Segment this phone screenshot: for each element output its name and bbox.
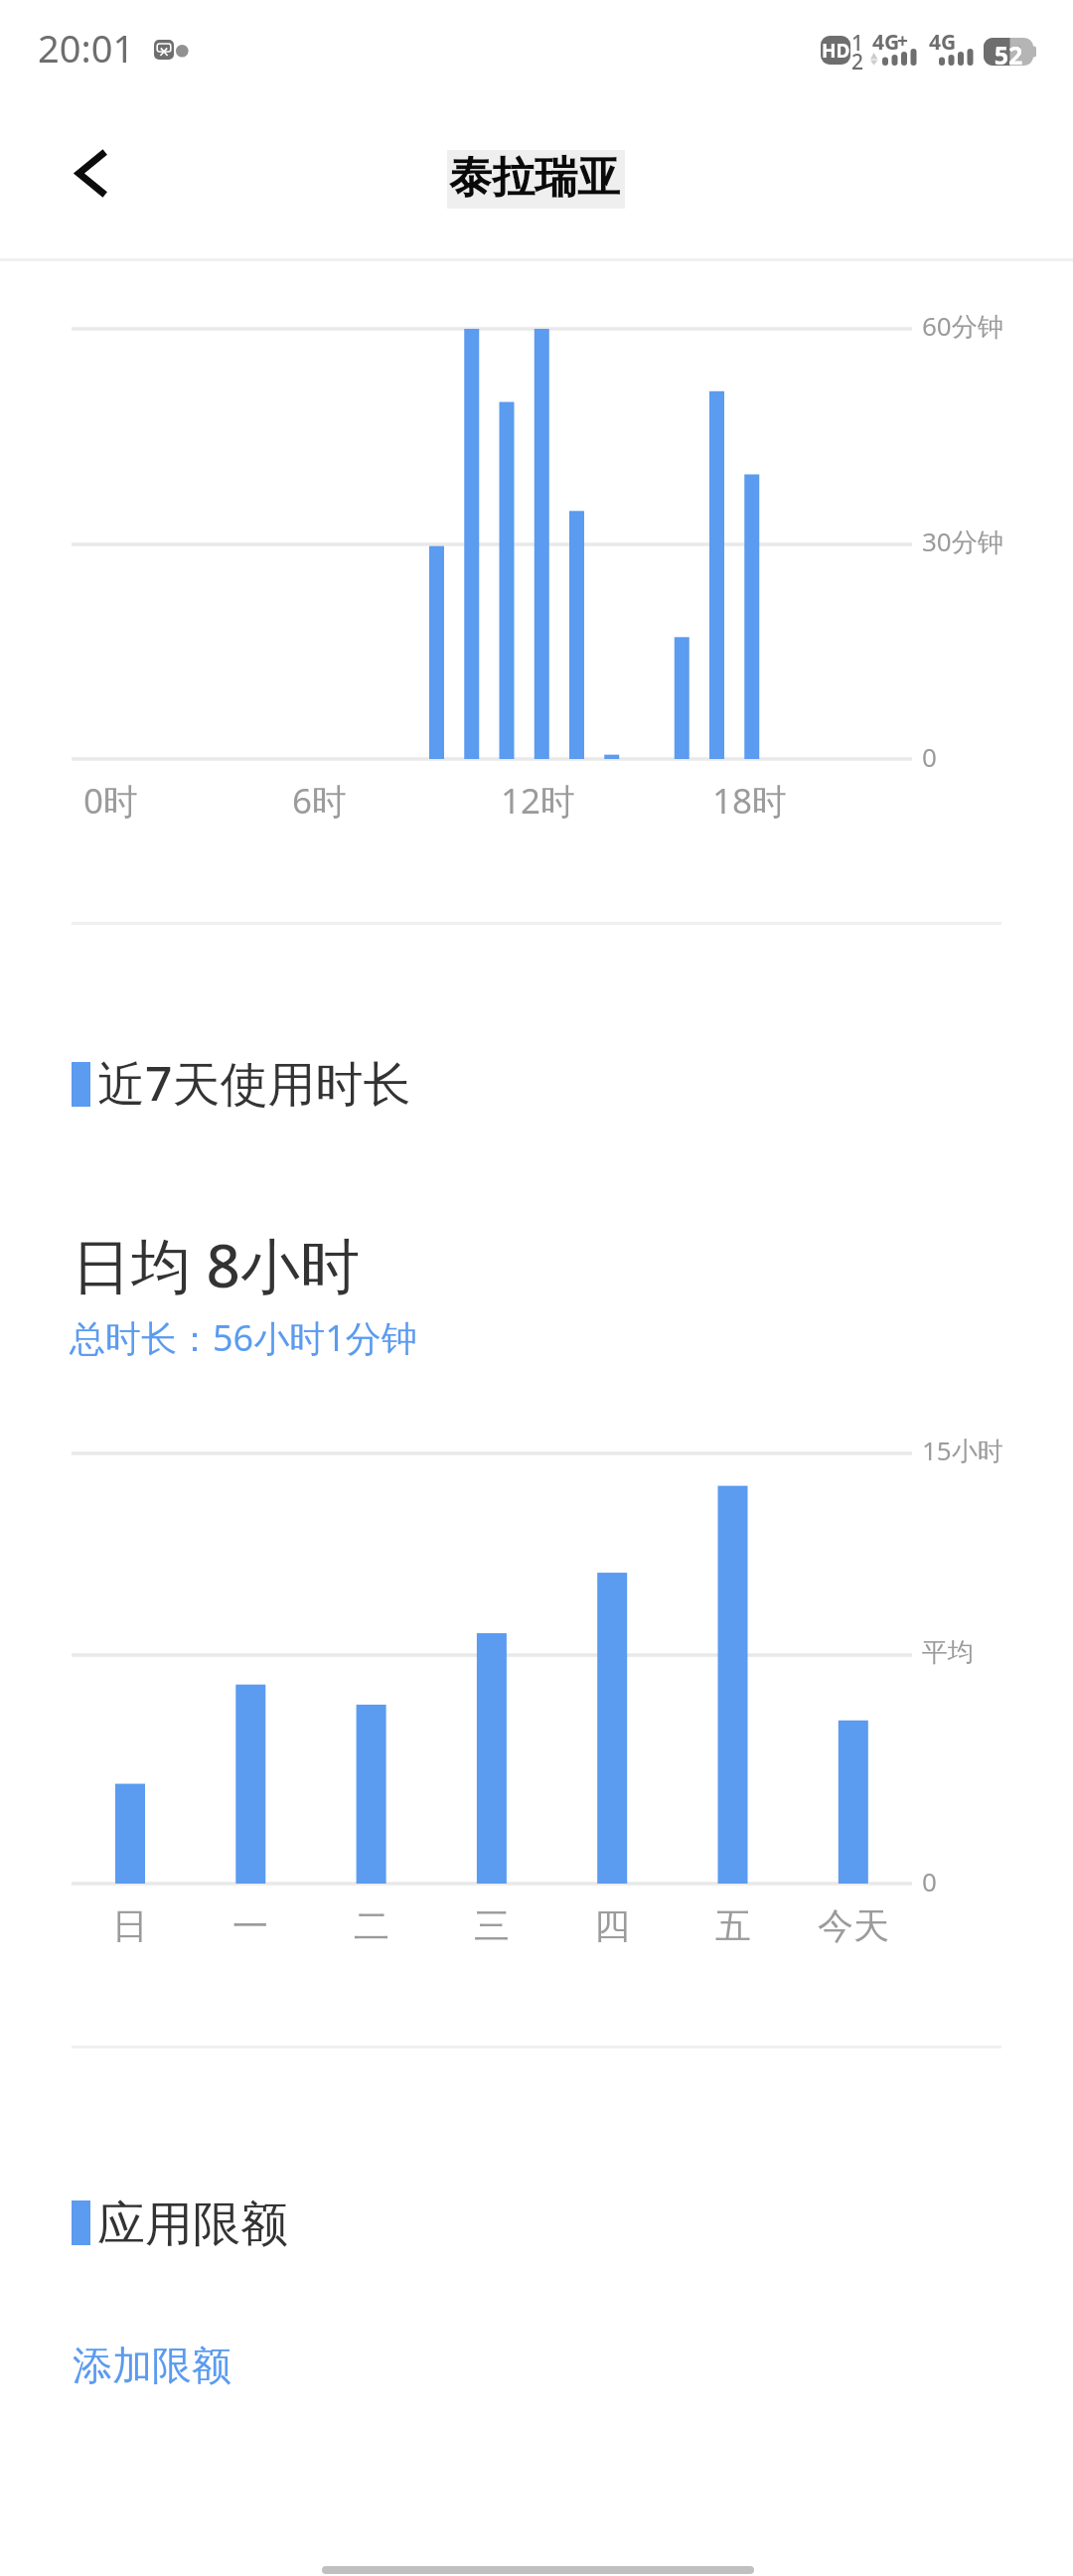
staticText: 添加限额	[73, 2341, 231, 2390]
staticText: 一	[232, 1903, 268, 1948]
staticText: 20:01	[38, 22, 135, 74]
staticText: 15小时	[922, 1433, 1003, 1468]
button[interactable]: Back	[34, 117, 143, 227]
staticText: 日均 8小时	[72, 1224, 360, 1305]
staticText: 二	[354, 1903, 389, 1948]
staticText: 今天	[818, 1903, 889, 1948]
staticText: 三	[474, 1903, 510, 1948]
staticText: 总时长：56小时1分钟	[70, 1313, 417, 1362]
staticText: 52	[991, 38, 1026, 72]
staticText: 4G	[872, 28, 900, 57]
staticText: 4G	[929, 28, 957, 57]
staticText: HD	[822, 38, 850, 64]
staticText: 0	[922, 1864, 937, 1898]
staticText: 平均	[922, 1636, 974, 1669]
staticText: 18时	[712, 777, 788, 825]
staticText: 12时	[501, 777, 576, 825]
staticText: 30分钟	[922, 524, 1003, 559]
staticText: 0时	[83, 777, 139, 825]
staticText: 1	[851, 29, 864, 58]
staticText: 60分钟	[922, 308, 1003, 344]
staticText: 五	[715, 1903, 751, 1948]
staticText: 泰拉瑞亚	[449, 151, 620, 205]
staticText: 6时	[292, 777, 348, 825]
staticText: 2	[851, 48, 864, 76]
staticText: +	[897, 28, 908, 54]
button[interactable]: 添加限额	[61, 2327, 243, 2404]
staticText: 0	[922, 739, 937, 774]
staticText: 日	[112, 1903, 148, 1948]
staticText: 四	[594, 1903, 630, 1948]
staticText: 应用限额	[97, 2195, 288, 2254]
staticText: 近7天使用时长	[97, 1050, 411, 1116]
